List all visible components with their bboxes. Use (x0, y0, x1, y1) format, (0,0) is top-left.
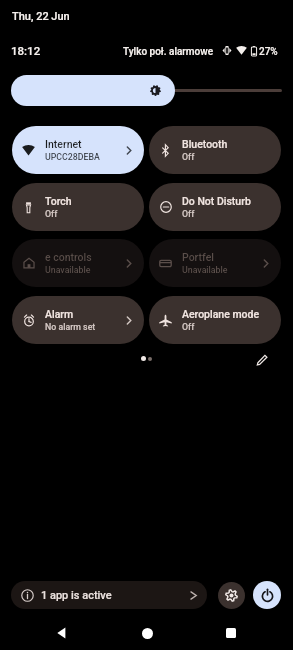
staticText: Unavailable (182, 265, 228, 275)
button[interactable]: Portfel (149, 239, 281, 287)
staticText: 27% (259, 46, 278, 58)
staticText: Alarm (45, 308, 74, 320)
button[interactable]: Home (129, 619, 165, 647)
staticText: Tylko poł. alarmowe (123, 46, 214, 58)
staticText: Thu, 22 Jun (12, 10, 70, 23)
button[interactable]: 1 app is active (11, 581, 207, 609)
staticText: Do Not Disturb (182, 195, 251, 207)
button[interactable]: Torch (12, 183, 144, 231)
staticText: Bluetooth (182, 138, 228, 150)
staticText: Off (182, 209, 195, 219)
staticText: Portfel (182, 251, 214, 263)
staticText: 1 app is active (41, 589, 112, 602)
button[interactable]: Internet (12, 126, 144, 174)
button[interactable]: Brightness (11, 75, 282, 106)
staticText: Internet (45, 138, 82, 150)
button[interactable]: Power (253, 581, 281, 609)
button[interactable]: Edit tiles (250, 347, 275, 372)
staticText: e controls (45, 251, 92, 263)
button[interactable]: Do Not Disturb (149, 183, 281, 231)
staticText: 18:12 (11, 44, 41, 57)
button[interactable]: Aeroplane mode (149, 296, 281, 344)
staticText: Aeroplane mode (182, 308, 260, 320)
button[interactable]: Settings (218, 582, 245, 609)
button[interactable]: Alarm (12, 296, 144, 344)
staticText: UPCC28DEBA (45, 152, 100, 162)
staticText: Torch (45, 195, 72, 207)
staticText: Off (45, 209, 58, 219)
button[interactable]: e controls (12, 239, 144, 287)
button[interactable]: Back (43, 619, 79, 647)
button[interactable]: Recents (213, 619, 249, 647)
staticText: Off (182, 152, 195, 162)
button[interactable]: Bluetooth (149, 126, 281, 174)
staticText: Unavailable (45, 265, 91, 275)
staticText: Off (182, 322, 195, 332)
staticText: No alarm set (45, 322, 96, 332)
